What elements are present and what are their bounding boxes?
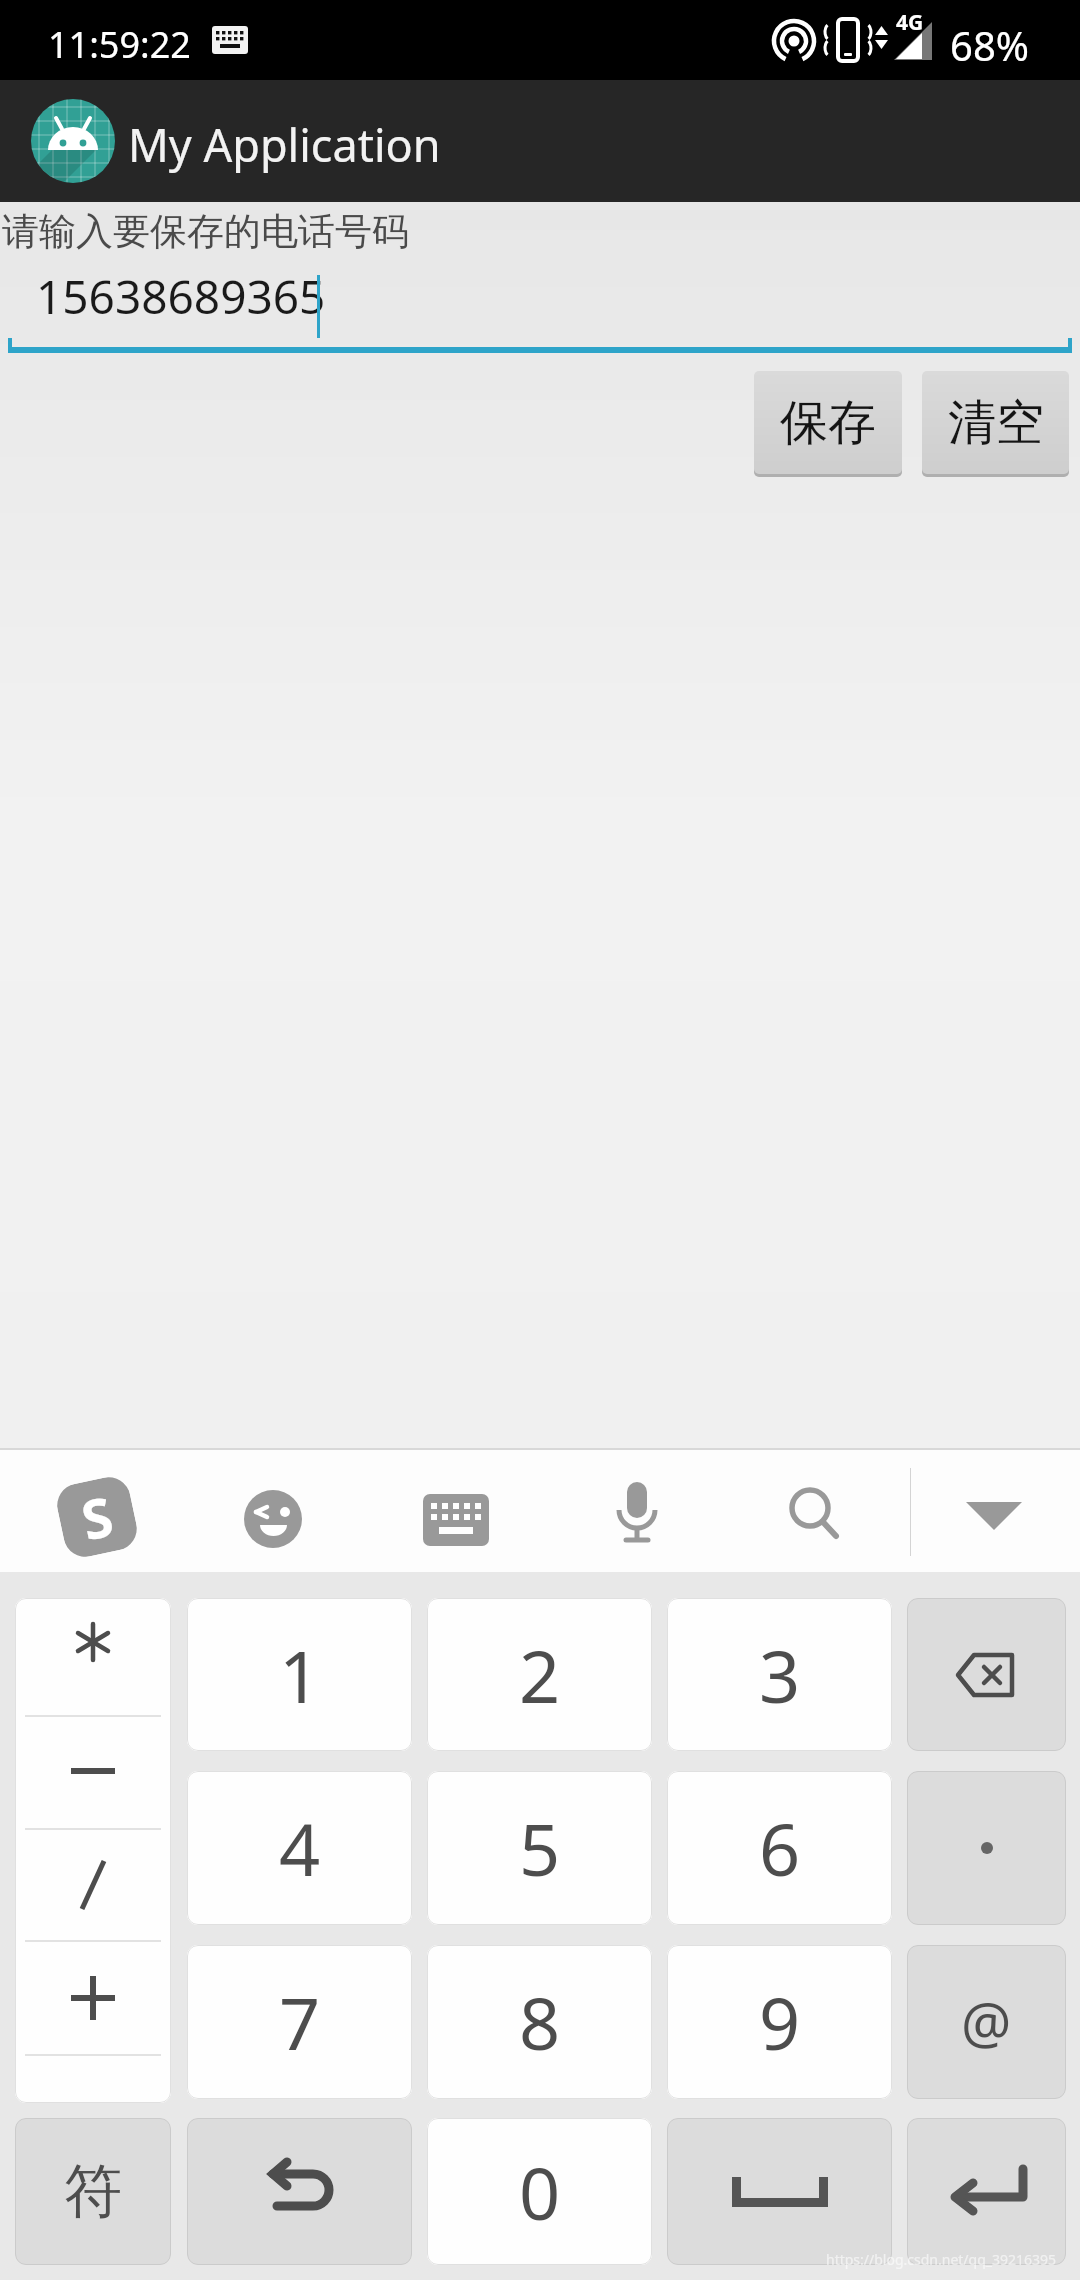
button[interactable]: 6 [667, 1771, 892, 1925]
staticText: 8 [519, 1973, 561, 2071]
button[interactable] [15, 1598, 171, 2103]
staticText: @ [961, 1984, 1012, 2060]
button[interactable]: 0 [427, 2118, 652, 2265]
staticText: 68% [950, 18, 1029, 72]
staticText: 6 [759, 1799, 801, 1897]
button[interactable]: 7 [187, 1945, 412, 2099]
button[interactable]: @ [907, 1945, 1066, 2099]
staticText: 符 [64, 2155, 122, 2228]
button[interactable]: 符 [15, 2118, 171, 2265]
button[interactable] [613, 1482, 661, 1546]
staticText: 11:59:22 [48, 20, 191, 69]
staticText: 保存 [780, 393, 876, 453]
staticText: https://blog.csdn.net/qq_39216395 [826, 2250, 1057, 2269]
button[interactable] [187, 2118, 412, 2265]
button[interactable] [907, 1771, 1066, 1925]
button[interactable]: 1 [187, 1598, 412, 1751]
staticText: 3 [759, 1626, 801, 1724]
button[interactable] [907, 2118, 1066, 2265]
button[interactable]: 保存 [754, 371, 902, 474]
button[interactable] [966, 1502, 1022, 1532]
staticText: S [75, 1478, 119, 1556]
staticText: 请输入要保存的电话号码 [2, 208, 409, 255]
button[interactable]: 5 [427, 1771, 652, 1925]
staticText: 0 [519, 2143, 561, 2241]
button[interactable] [667, 2118, 892, 2265]
button[interactable]: 清空 [922, 371, 1069, 474]
staticText: 清空 [948, 393, 1044, 453]
button[interactable]: 4 [187, 1771, 412, 1925]
staticText: 5 [519, 1799, 561, 1897]
button[interactable]: 9 [667, 1945, 892, 2099]
button[interactable] [423, 1494, 489, 1546]
staticText: 2 [519, 1626, 561, 1724]
staticText: 1 [279, 1626, 321, 1724]
button[interactable] [907, 1598, 1066, 1751]
button[interactable]: 3 [667, 1598, 892, 1751]
button[interactable]: S [53, 1473, 141, 1561]
staticText: 7 [279, 1973, 321, 2071]
staticText: 4 [279, 1799, 321, 1897]
staticText: 15638689365 [36, 265, 326, 328]
button[interactable]: 2 [427, 1598, 652, 1751]
button[interactable] [786, 1486, 842, 1542]
button[interactable] [243, 1489, 303, 1549]
button[interactable]: 8 [427, 1945, 652, 2099]
staticText: 4G [896, 8, 924, 37]
staticText: My Application [128, 114, 441, 175]
staticText: 9 [759, 1973, 801, 2071]
